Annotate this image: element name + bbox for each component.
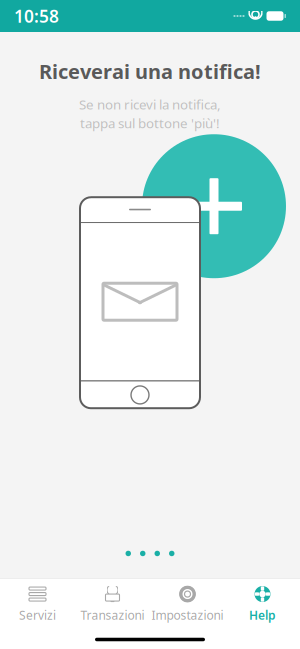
staticText: Se non ricevi la notifica,	[79, 96, 221, 113]
button[interactable]: Impostazioni	[150, 579, 225, 630]
staticText: tappa sul bottone 'più'!	[80, 114, 220, 132]
staticText: Servizi	[19, 607, 56, 623]
staticText: Riceverai una notifica!	[39, 58, 261, 85]
staticText: Impostazioni	[151, 607, 223, 623]
staticText: 10:58	[14, 4, 59, 27]
button[interactable]: Transazioni	[75, 579, 150, 630]
staticText: Transazioni	[80, 607, 144, 623]
button[interactable]: Help	[225, 579, 300, 630]
button[interactable]: Servizi	[0, 579, 75, 630]
staticText: Help	[249, 607, 276, 623]
